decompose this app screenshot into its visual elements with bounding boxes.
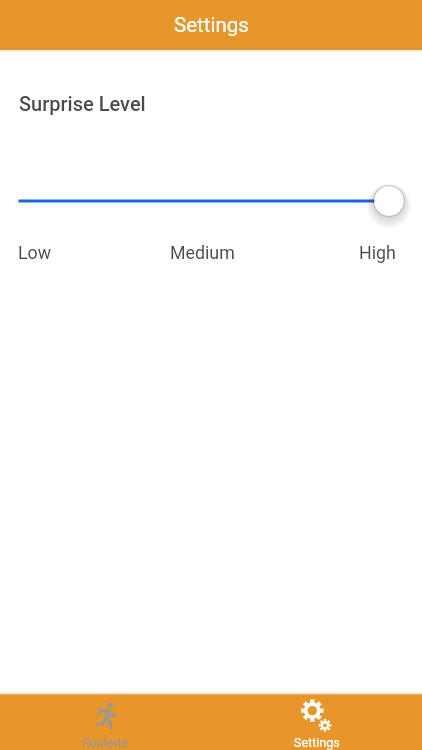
staticText: Settings xyxy=(174,13,249,37)
staticText: Settings xyxy=(294,735,340,750)
button[interactable]: Surprise level slider xyxy=(0,179,422,223)
staticText: Low xyxy=(18,242,52,263)
staticText: Surprise Level xyxy=(19,92,146,115)
staticText: High xyxy=(359,242,396,263)
staticText: Medium xyxy=(170,242,235,263)
button[interactable]: Roulette xyxy=(0,695,211,750)
button[interactable]: Settings xyxy=(211,695,422,750)
staticText: Roulette xyxy=(82,735,129,750)
other: Settings xyxy=(301,699,333,731)
other: Roulette xyxy=(89,698,123,732)
